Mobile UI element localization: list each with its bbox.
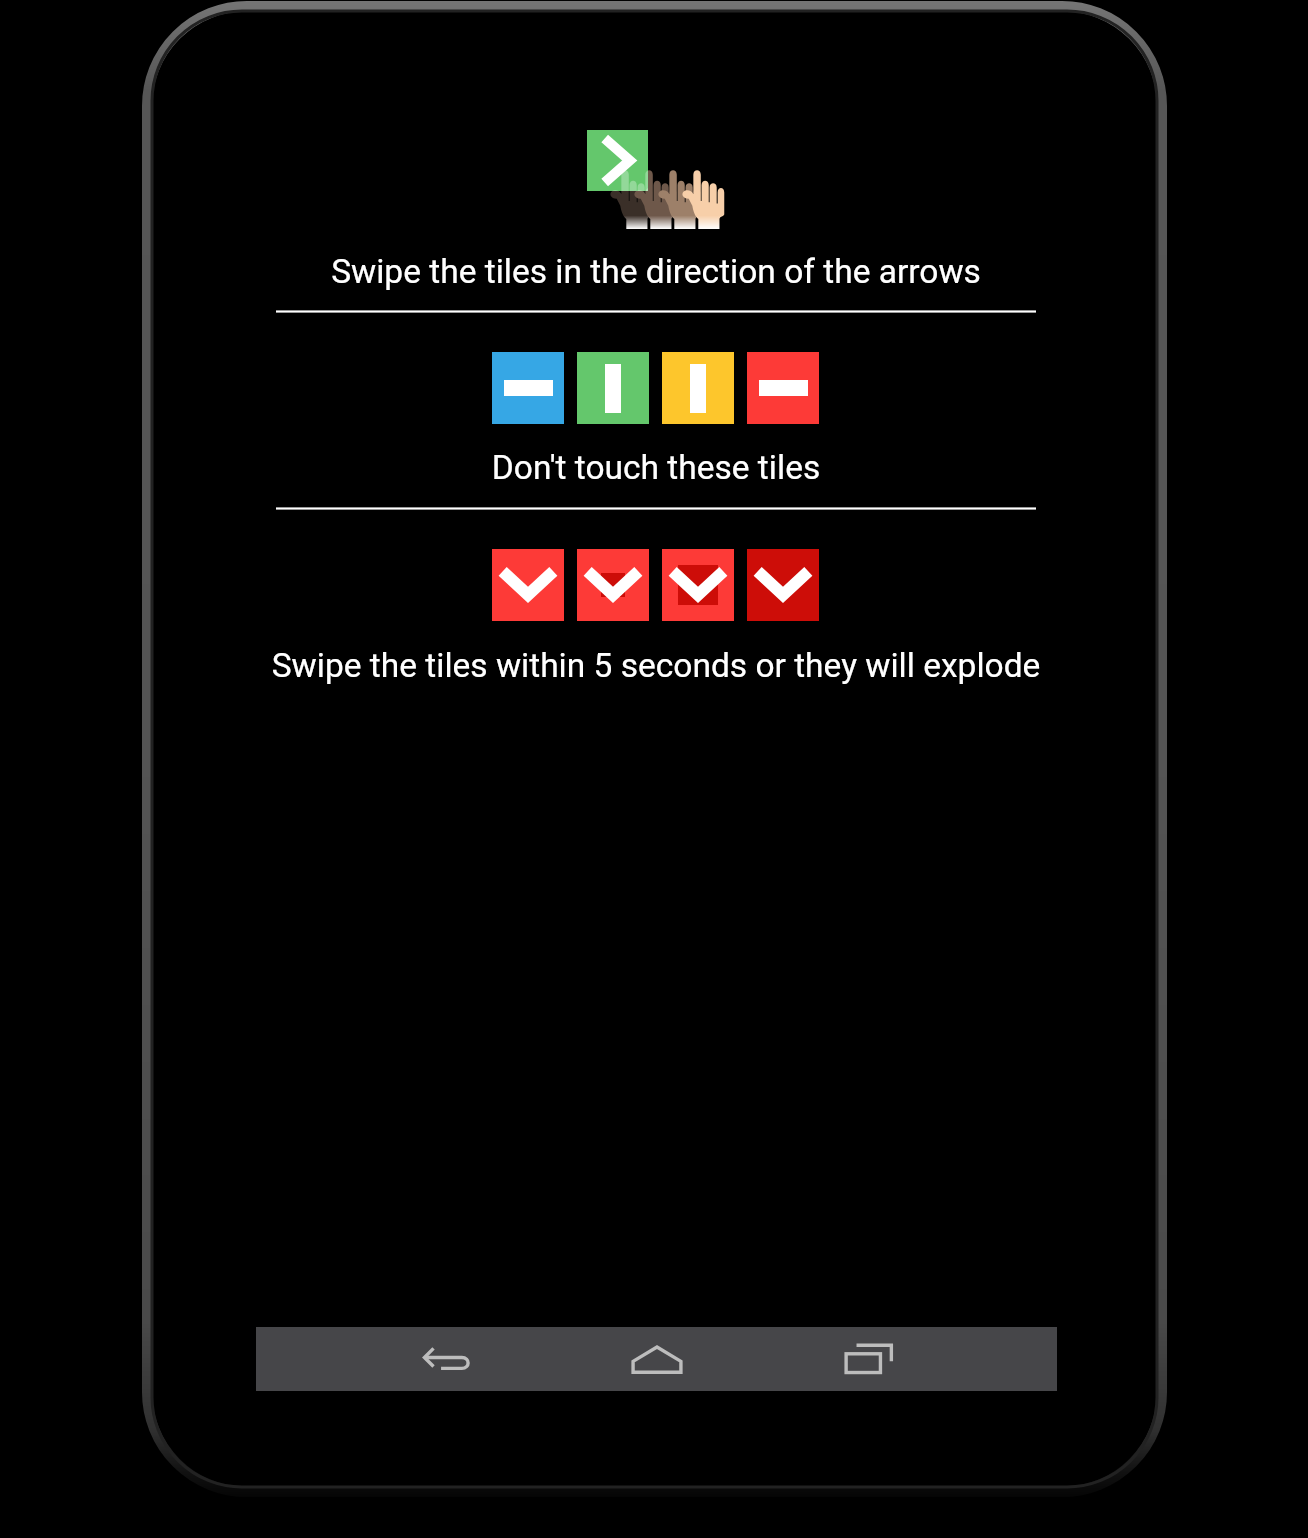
button[interactable]: Home bbox=[604, 1327, 710, 1390]
staticText: Swipe the tiles within 5 seconds or they… bbox=[256, 646, 1056, 1538]
button[interactable]: Back bbox=[393, 1327, 499, 1390]
button[interactable] bbox=[747, 352, 819, 424]
staticText: Swipe the tiles in the direction of the … bbox=[256, 252, 1056, 1538]
button[interactable]: Recent apps bbox=[816, 1327, 922, 1390]
staticText: Don't touch these tiles bbox=[256, 448, 1056, 1538]
button[interactable] bbox=[577, 549, 649, 621]
button[interactable] bbox=[577, 352, 649, 424]
button[interactable] bbox=[662, 549, 734, 621]
button[interactable] bbox=[747, 549, 819, 621]
button[interactable] bbox=[662, 352, 734, 424]
button[interactable] bbox=[492, 352, 564, 424]
button[interactable] bbox=[492, 549, 564, 621]
